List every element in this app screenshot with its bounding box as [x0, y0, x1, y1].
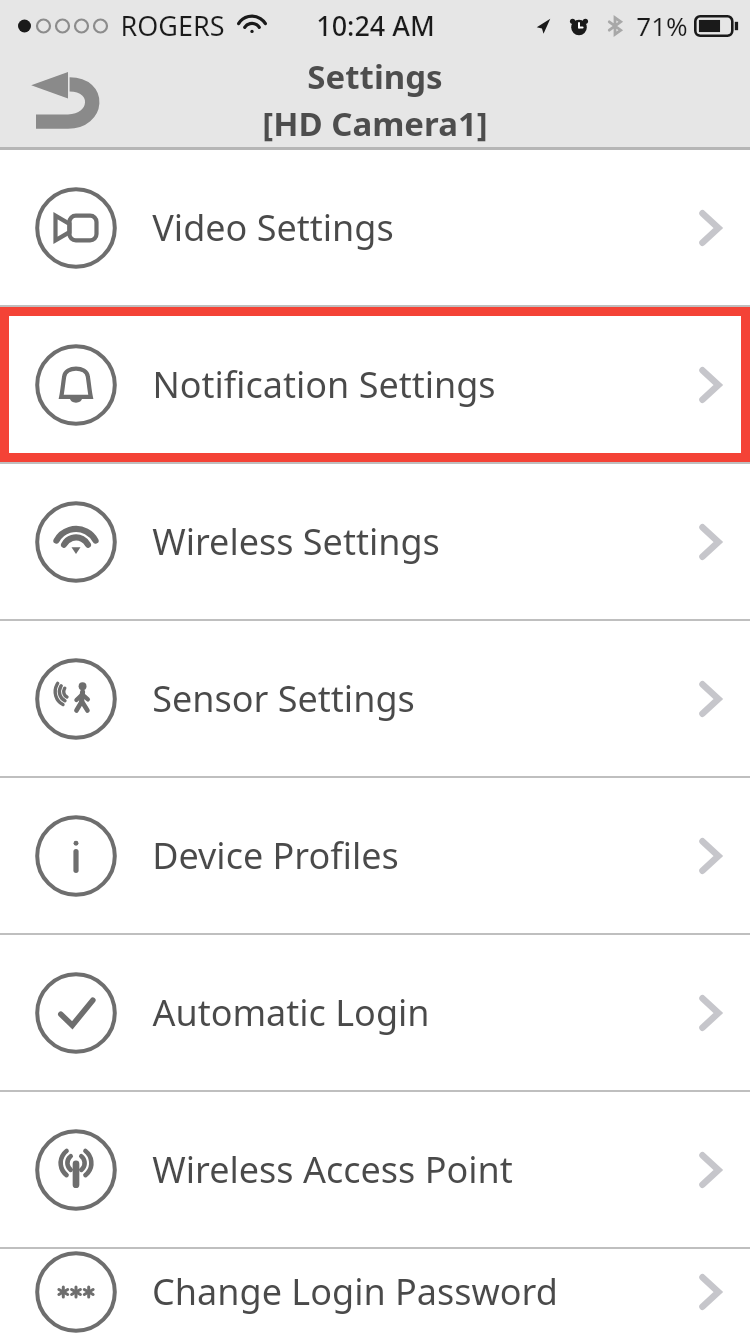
staticText: 10:24 AM [316, 7, 435, 44]
staticText: Video Settings [152, 203, 394, 252]
staticText: 71% [636, 8, 688, 43]
button[interactable]: Wireless Settings [0, 464, 750, 619]
button[interactable]: Automatic Login [0, 935, 750, 1090]
button[interactable]: Change Login Password [0, 1249, 750, 1334]
staticText: ROGERS [120, 7, 225, 44]
staticText: Device Profiles [152, 831, 399, 880]
staticText: Settings [307, 54, 443, 99]
staticText: [HD Camera1] [262, 101, 488, 146]
button[interactable]: Device Profiles [0, 778, 750, 933]
button[interactable]: Wireless Access Point [0, 1092, 750, 1247]
staticText: Sensor Settings [152, 674, 415, 723]
staticText: Change Login Password [152, 1267, 558, 1316]
staticText: Wireless Settings [152, 517, 440, 566]
button[interactable]: Video Settings [0, 150, 750, 305]
staticText: Automatic Login [152, 988, 430, 1037]
button[interactable]: Back [20, 60, 116, 140]
button[interactable]: Sensor Settings [0, 621, 750, 776]
button[interactable]: Notification Settings [0, 307, 750, 462]
staticText: Wireless Access Point [152, 1145, 513, 1194]
staticText: Notification Settings [152, 360, 496, 409]
